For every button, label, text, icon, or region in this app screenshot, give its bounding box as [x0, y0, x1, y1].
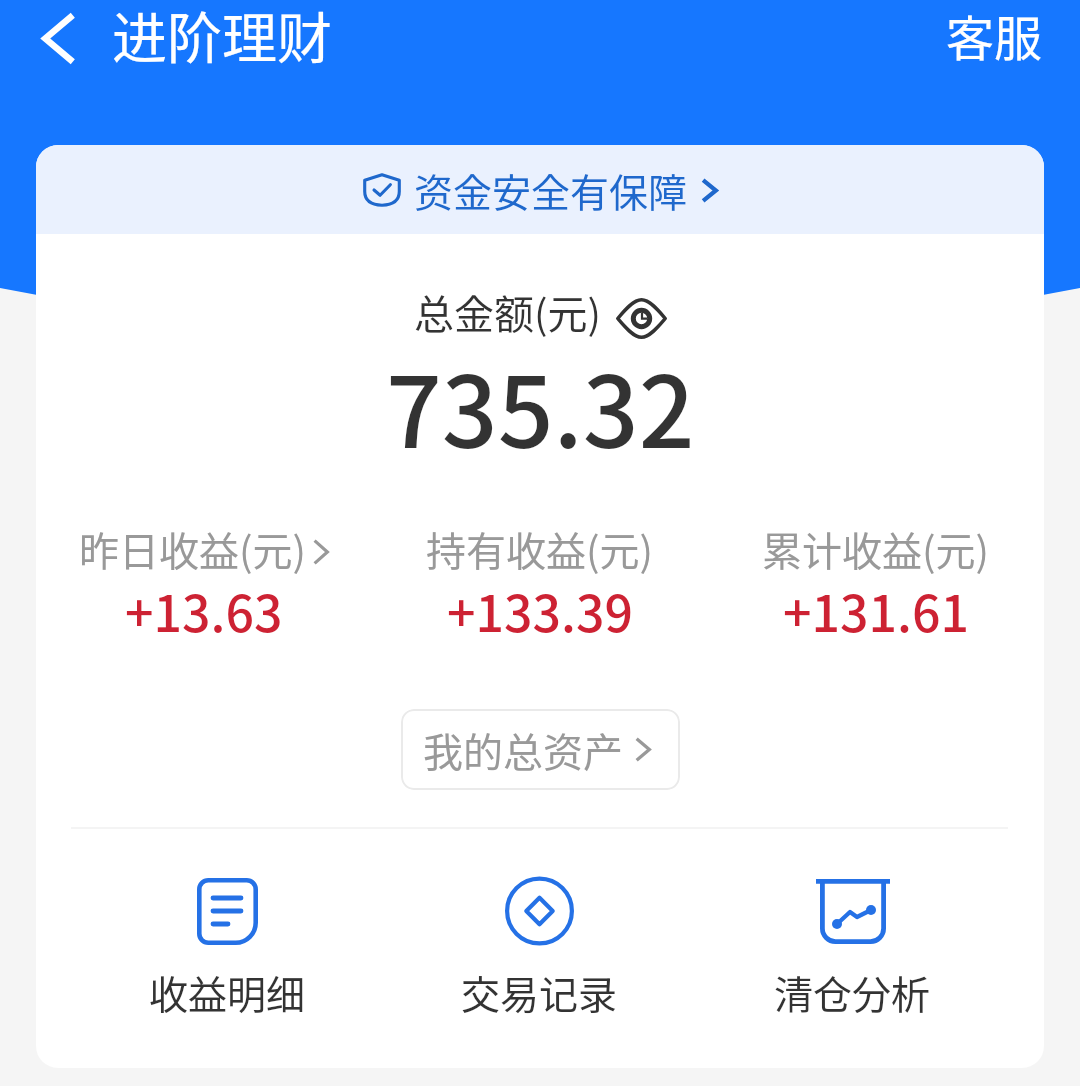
button[interactable]: 持有收益(元)	[372, 520, 708, 650]
button[interactable]: 我的总资产	[401, 709, 680, 790]
staticText: 进阶理财	[112, 0, 333, 74]
button[interactable]: 客服	[940, 0, 1049, 76]
staticText: 交易记录	[461, 964, 618, 1020]
staticText: 清仓分析	[774, 964, 931, 1020]
staticText: 持有收益(元)	[426, 520, 654, 578]
staticText: 我的总资产	[423, 721, 623, 779]
staticText: +131.61	[783, 574, 969, 646]
staticText: +13.63	[125, 574, 283, 646]
staticText: 总金额(元)	[414, 283, 602, 341]
button[interactable]: Toggle amount visibility	[615, 294, 667, 342]
button[interactable]: 昨日收益(元)	[36, 520, 372, 650]
button[interactable]: 进阶理财	[112, 0, 333, 74]
button[interactable]: 收益明细	[71, 877, 383, 1020]
button[interactable]: 清仓分析	[696, 877, 1009, 1020]
staticText: 昨日收益(元)	[79, 520, 307, 578]
button[interactable]: Back	[25, 5, 92, 71]
button[interactable]: 累计收益(元)	[708, 520, 1044, 650]
staticText: 收益明细	[149, 964, 306, 1020]
staticText: 客服	[946, 0, 1043, 70]
staticText: 735.32	[386, 334, 695, 476]
button[interactable]: 交易记录	[383, 877, 696, 1020]
button[interactable]: 资金安全有保障	[36, 145, 1044, 234]
staticText: +133.39	[447, 574, 633, 646]
staticText: 资金安全有保障	[414, 162, 688, 218]
staticText: 累计收益(元)	[762, 520, 990, 578]
